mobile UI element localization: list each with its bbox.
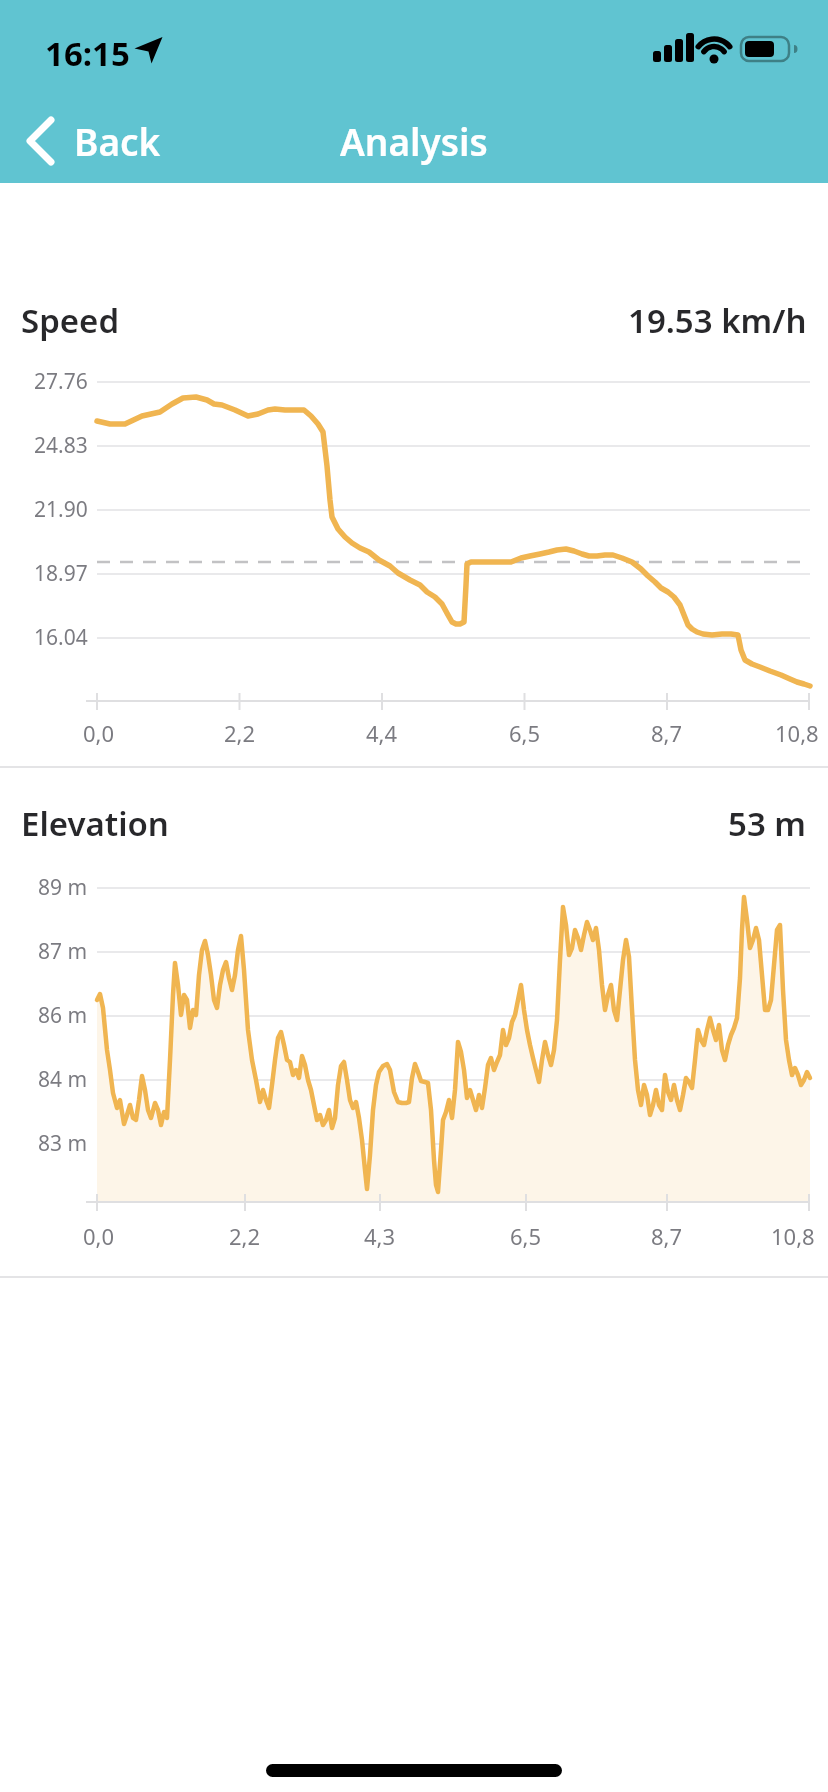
staticText: Speed xyxy=(21,298,120,343)
staticText: 0,0 xyxy=(83,718,115,748)
staticText: 83 m xyxy=(38,1129,88,1158)
staticText: 6,5 xyxy=(509,718,541,748)
staticText: 8,7 xyxy=(651,718,683,748)
staticText: 21.90 xyxy=(34,495,88,524)
staticText: 84 m xyxy=(38,1065,88,1094)
staticText: 53 m xyxy=(728,801,807,846)
staticText: 10,8 xyxy=(771,1221,815,1251)
staticText: Back xyxy=(74,116,161,166)
staticText: 6,5 xyxy=(510,1221,542,1251)
staticText: Analysis xyxy=(340,116,488,166)
staticText: 27.76 xyxy=(34,367,88,396)
staticText: 4,4 xyxy=(366,718,398,748)
staticText: Elevation xyxy=(21,801,169,846)
button[interactable]: Back xyxy=(18,108,169,174)
staticText: 10,8 xyxy=(775,718,819,748)
staticText: 16:15 xyxy=(45,31,130,76)
staticText: 18.97 xyxy=(34,559,88,588)
staticText: 19.53 km/h xyxy=(628,298,807,343)
staticText: 8,7 xyxy=(651,1221,683,1251)
staticText: 86 m xyxy=(38,1001,88,1030)
staticText: 89 m xyxy=(38,873,88,902)
staticText: 2,2 xyxy=(224,718,256,748)
staticText: 24.83 xyxy=(34,431,88,460)
staticText: 87 m xyxy=(38,937,88,966)
staticText: 0,0 xyxy=(83,1221,115,1251)
staticText: 2,2 xyxy=(229,1221,261,1251)
staticText: 16.04 xyxy=(34,623,88,652)
staticText: 4,3 xyxy=(364,1221,396,1251)
